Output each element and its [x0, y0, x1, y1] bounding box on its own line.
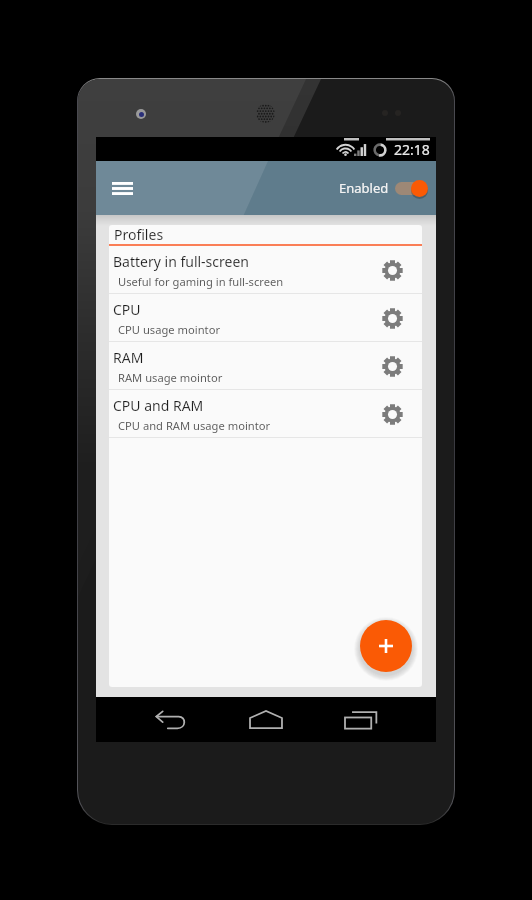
staticText: RAM usage mointor [118, 370, 223, 385]
button[interactable]: Settings for CPU [370, 296, 414, 340]
button[interactable]: Settings for Battery in full-screen [370, 248, 414, 292]
button[interactable]: Open navigation drawer [99, 165, 145, 211]
button[interactable]: Back [135, 697, 207, 742]
button[interactable]: CPU and RAM [109, 390, 422, 437]
staticText: Useful for gaming in full-screen [118, 274, 284, 289]
staticText: CPU and RAM [113, 396, 204, 415]
button[interactable]: Enabled [339, 177, 429, 199]
staticText: CPU [113, 300, 141, 319]
button[interactable]: Battery in full-screen [109, 246, 422, 293]
staticText: Enabled [339, 179, 389, 197]
button[interactable]: CPU [109, 294, 422, 341]
staticText: Battery in full-screen [113, 252, 249, 271]
button[interactable]: RAM [109, 342, 422, 389]
staticText: Profiles [114, 225, 164, 244]
button[interactable]: Settings for RAM [370, 344, 414, 388]
staticText: CPU and RAM usage mointor [118, 418, 271, 433]
button[interactable]: Settings for CPU and RAM [370, 392, 414, 436]
button[interactable]: Add profile [360, 620, 412, 672]
staticText: RAM [113, 348, 144, 367]
staticText: 22:18 [394, 140, 430, 159]
button[interactable]: Home [230, 697, 302, 742]
staticText: CPU usage mointor [118, 322, 221, 337]
button[interactable]: Recent apps [325, 697, 397, 742]
